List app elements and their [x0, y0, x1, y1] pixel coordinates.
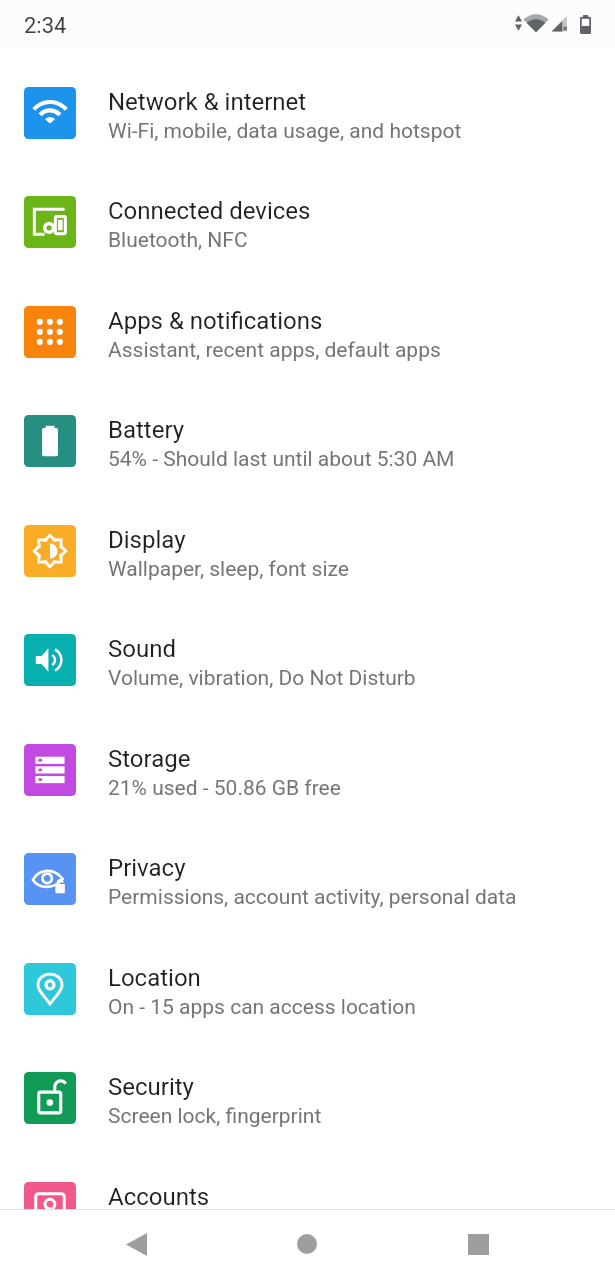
button[interactable]: Battery [0, 387, 615, 497]
staticText: Permissions, account activity, personal … [108, 885, 517, 910]
button[interactable]: Sound [0, 606, 615, 716]
staticText: Network & internet [108, 88, 307, 116]
button[interactable]: Home [283, 1220, 331, 1268]
button[interactable]: Display [0, 497, 615, 607]
button[interactable]: Network & internet [0, 59, 615, 169]
button[interactable]: Connected devices [0, 168, 615, 278]
staticText: Privacy [108, 854, 186, 882]
staticText: Wi-Fi, mobile, data usage, and hotspot [108, 119, 462, 144]
staticText: Security [108, 1073, 194, 1101]
staticText: Location [108, 964, 201, 992]
staticText: 54% - Should last until about 5:30 AM [108, 447, 455, 472]
staticText: Assistant, recent apps, default apps [108, 338, 441, 363]
button[interactable]: Privacy [0, 825, 615, 935]
staticText: Volume, vibration, Do Not Disturb [108, 666, 416, 691]
staticText: 21% used - 50.86 GB free [108, 776, 341, 801]
staticText: Wallpaper, sleep, font size [108, 557, 349, 582]
button[interactable]: Back [112, 1220, 160, 1268]
staticText: Apps & notifications [108, 307, 323, 335]
staticText: On - 15 apps can access location [108, 995, 416, 1020]
button[interactable]: Apps & notifications [0, 278, 615, 388]
staticText: Storage [108, 745, 191, 773]
staticText: Bluetooth, NFC [108, 228, 248, 253]
staticText: Accounts [108, 1183, 210, 1211]
staticText: Screen lock, fingerprint [108, 1104, 322, 1129]
staticText: Display [108, 526, 186, 554]
button[interactable]: Security [0, 1044, 615, 1154]
staticText: Sound [108, 635, 176, 663]
staticText: 2:34 [24, 13, 67, 39]
button[interactable]: Location [0, 935, 615, 1045]
button[interactable]: Recent apps [454, 1220, 502, 1268]
button[interactable]: Accounts [0, 1154, 615, 1264]
staticText: Google [108, 1214, 175, 1239]
button[interactable]: Storage [0, 716, 615, 826]
staticText: Connected devices [108, 197, 311, 225]
staticText: Battery [108, 416, 185, 444]
